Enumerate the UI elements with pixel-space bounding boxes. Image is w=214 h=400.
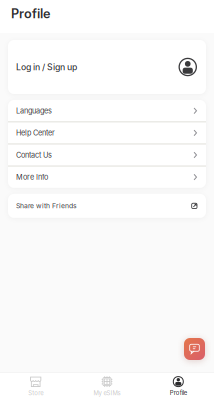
- button[interactable]: Share with Friends: [8, 194, 206, 218]
- staticText: Share with Friends: [16, 202, 77, 210]
- staticText: My eSIMs: [93, 389, 120, 397]
- staticText: Log in / Sign up: [16, 62, 77, 72]
- button[interactable]: Help Center: [8, 122, 206, 144]
- button[interactable]: Languages: [8, 100, 206, 122]
- button[interactable]: My eSIMs: [71, 372, 143, 400]
- staticText: More Info: [16, 173, 48, 182]
- button[interactable]: Store: [0, 372, 71, 400]
- staticText: Help Center: [16, 128, 55, 137]
- staticText: Profile: [170, 389, 187, 396]
- button[interactable]: Support chat: [184, 338, 205, 360]
- button[interactable]: Contact Us: [8, 144, 206, 166]
- staticText: Languages: [16, 106, 52, 115]
- staticText: Profile: [11, 6, 50, 21]
- staticText: Contact Us: [16, 151, 52, 159]
- staticText: Store: [28, 389, 43, 397]
- button[interactable]: More Info: [8, 166, 206, 188]
- button[interactable]: Log in / Sign up: [8, 40, 206, 94]
- button[interactable]: Profile: [143, 372, 214, 400]
